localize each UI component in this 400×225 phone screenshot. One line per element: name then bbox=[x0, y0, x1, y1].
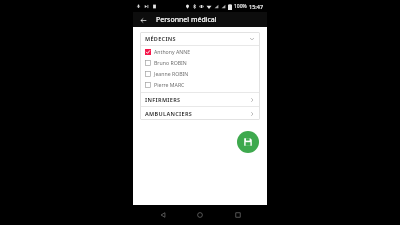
button[interactable]: Enregistrer bbox=[237, 131, 259, 153]
staticText: 15:47 bbox=[249, 3, 264, 10]
staticText: Pierre MARC bbox=[154, 81, 185, 88]
button[interactable]: MÉDECINS bbox=[140, 32, 260, 45]
button[interactable]: Bruno ROBIN bbox=[140, 57, 260, 68]
button[interactable]: Retour bbox=[155, 207, 171, 223]
staticText: Jeanne ROBIN bbox=[154, 70, 189, 77]
button[interactable]: AMBULANCIERS bbox=[140, 107, 260, 120]
button[interactable]: Pierre MARC bbox=[140, 79, 260, 90]
staticText: INFIRMIERS bbox=[145, 96, 249, 103]
button[interactable]: INFIRMIERS bbox=[140, 93, 260, 106]
button[interactable]: Retour bbox=[137, 14, 149, 26]
staticText: Bruno ROBIN bbox=[154, 59, 187, 66]
button[interactable]: Jeanne ROBIN bbox=[140, 68, 260, 79]
staticText: Personnel médical bbox=[156, 15, 217, 25]
staticText: MÉDECINS bbox=[145, 35, 249, 42]
button[interactable]: Applications récentes bbox=[230, 207, 246, 223]
staticText: AMBULANCIERS bbox=[145, 110, 249, 117]
staticText: Anthony ANNE bbox=[154, 48, 191, 55]
staticText: 100% bbox=[234, 3, 247, 10]
button[interactable]: Anthony ANNE bbox=[140, 46, 260, 57]
button[interactable]: Accueil bbox=[192, 207, 208, 223]
